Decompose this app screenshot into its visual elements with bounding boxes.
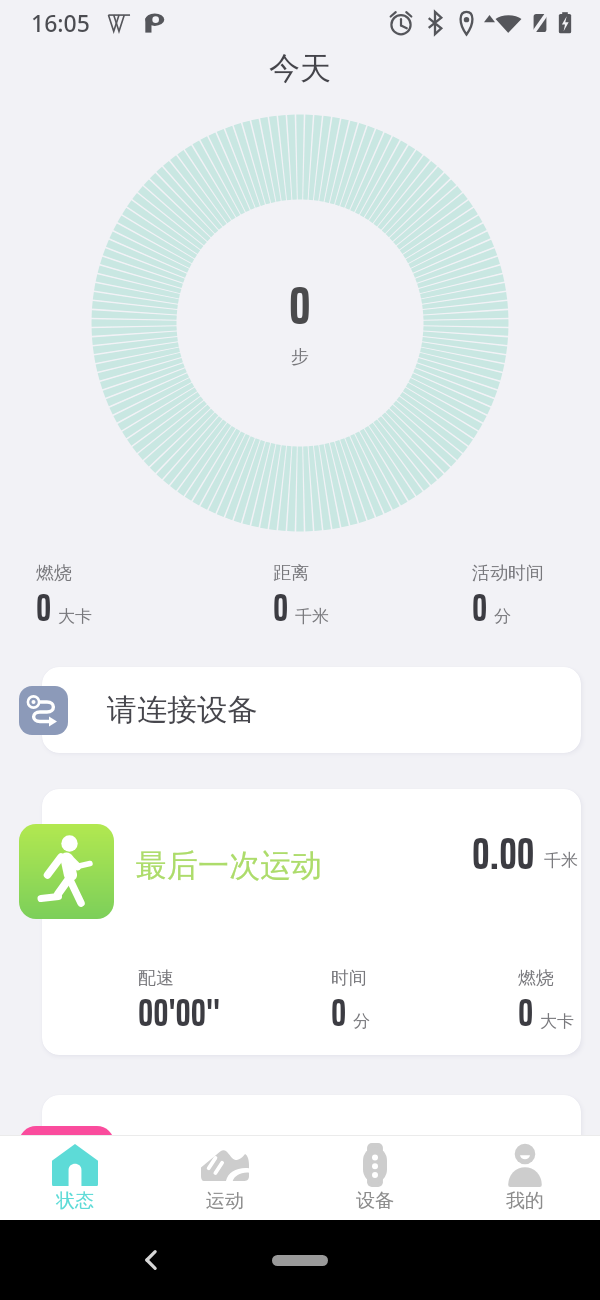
button[interactable]: Heart rate bbox=[19, 1126, 114, 1215]
staticText: 0 bbox=[518, 983, 534, 1043]
staticText: 千米 bbox=[544, 850, 578, 871]
button[interactable]: 最后一次运动 bbox=[42, 789, 581, 1055]
staticText: 活动时间 bbox=[472, 562, 544, 585]
staticText: 距离 bbox=[273, 562, 309, 585]
staticText: 请连接设备 bbox=[107, 691, 257, 729]
staticText: 千米 bbox=[295, 606, 329, 627]
staticText: 大卡 bbox=[58, 606, 92, 627]
staticText: 分 bbox=[494, 606, 511, 627]
button[interactable]: 请连接设备 bbox=[42, 667, 581, 753]
staticText: 0 bbox=[289, 263, 311, 348]
button[interactable] bbox=[42, 1095, 581, 1215]
staticText: 时间 bbox=[331, 967, 367, 990]
staticText: 大卡 bbox=[540, 1011, 574, 1032]
button[interactable]: Connect device bbox=[19, 686, 68, 735]
other: Back bbox=[138, 1247, 164, 1273]
staticText: 配速 bbox=[138, 967, 174, 990]
staticText: 0.00 bbox=[472, 819, 535, 888]
staticText: 0 bbox=[331, 983, 347, 1043]
staticText: 00'00'' bbox=[138, 983, 221, 1043]
staticText: 16:05 bbox=[31, 7, 90, 38]
button[interactable]: 运动 bbox=[150, 1136, 300, 1220]
staticText: 运动 bbox=[206, 1189, 244, 1213]
staticText: 0 bbox=[273, 578, 289, 638]
staticText: 设备 bbox=[356, 1189, 394, 1213]
staticText: 我的 bbox=[506, 1189, 544, 1213]
button[interactable]: 我的 bbox=[450, 1136, 600, 1220]
staticText: 燃烧 bbox=[518, 967, 554, 990]
staticText: 0 bbox=[472, 578, 488, 638]
button[interactable]: Running bbox=[19, 824, 114, 919]
staticText: 燃烧 bbox=[36, 562, 72, 585]
staticText: 分 bbox=[353, 1011, 370, 1032]
staticText: 状态 bbox=[56, 1189, 94, 1213]
staticText: 步 bbox=[291, 346, 309, 369]
staticText: 0 bbox=[36, 578, 52, 638]
staticText: 今天 bbox=[269, 49, 331, 88]
button[interactable]: 状态 bbox=[0, 1136, 150, 1220]
button[interactable]: 设备 bbox=[300, 1136, 450, 1220]
staticText: 最后一次运动 bbox=[136, 846, 322, 885]
